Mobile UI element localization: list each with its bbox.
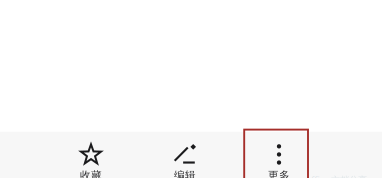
staticText: 更多	[268, 169, 290, 178]
staticText: 编辑	[174, 169, 196, 178]
button[interactable]: 收藏	[44, 131, 138, 178]
button[interactable]: 更多	[232, 131, 326, 178]
button[interactable]: 编辑	[138, 131, 232, 178]
staticText: wps office 文档分享	[286, 173, 367, 178]
staticText: 收藏	[80, 169, 102, 178]
